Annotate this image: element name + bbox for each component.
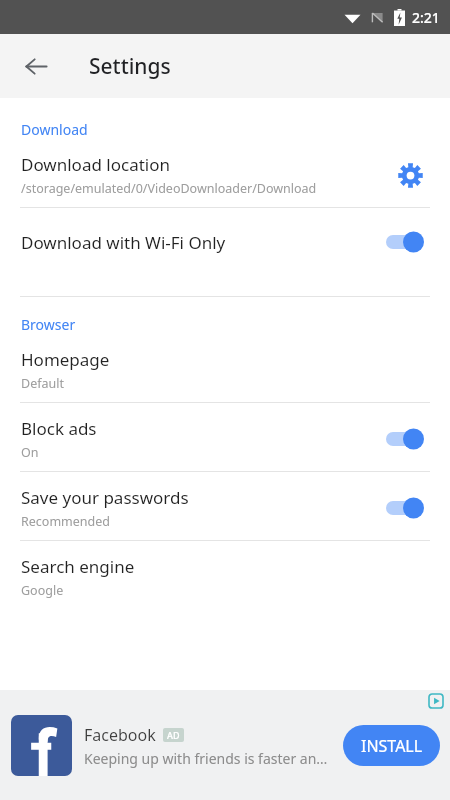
staticText: On bbox=[21, 444, 39, 461]
staticText: Settings bbox=[89, 52, 171, 81]
staticText: AD bbox=[167, 729, 180, 741]
button[interactable]: Save your passwords bbox=[0, 472, 450, 540]
staticText: Search engine bbox=[21, 555, 135, 578]
button[interactable]: Back bbox=[12, 42, 60, 90]
staticText: INSTALL bbox=[361, 735, 423, 757]
button[interactable]: Toggle bbox=[378, 421, 430, 457]
staticText: Save your passwords bbox=[21, 486, 189, 509]
button[interactable]: Facebook bbox=[0, 715, 450, 776]
button[interactable]: Toggle bbox=[378, 490, 430, 526]
button[interactable]: Toggle bbox=[378, 224, 430, 260]
staticText: Default bbox=[21, 375, 64, 392]
button[interactable]: Download location bbox=[0, 139, 450, 207]
button[interactable]: Homepage bbox=[0, 334, 450, 402]
staticText: Keeping up with friends is faster an… bbox=[84, 749, 328, 768]
staticText: Google bbox=[21, 582, 64, 599]
staticText: Recommended bbox=[21, 513, 110, 530]
staticText: Homepage bbox=[21, 348, 110, 371]
button[interactable]: Change download location bbox=[390, 155, 430, 195]
staticText: /storage/emulated/0/VideoDownloader/Down… bbox=[21, 180, 317, 197]
staticText: Block ads bbox=[21, 417, 97, 440]
staticText: Download bbox=[21, 120, 88, 139]
staticText: Facebook bbox=[84, 724, 156, 746]
staticText: Download with Wi-Fi Only bbox=[21, 231, 378, 254]
button[interactable]: Block ads bbox=[0, 403, 450, 471]
button[interactable]: Download with Wi-Fi Only bbox=[0, 208, 450, 276]
button[interactable]: INSTALL bbox=[343, 725, 440, 766]
button[interactable]: Search engine bbox=[0, 541, 450, 609]
staticText: 2:21 bbox=[412, 8, 440, 27]
staticText: Download location bbox=[21, 153, 170, 176]
staticText: Browser bbox=[21, 315, 76, 334]
